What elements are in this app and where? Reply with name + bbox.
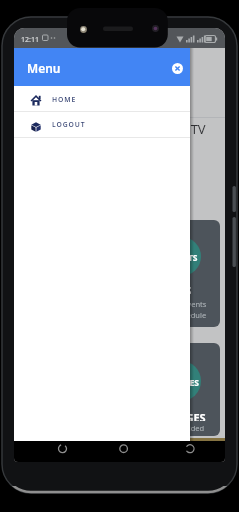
button[interactable]: HOME <box>14 86 190 111</box>
button[interactable] <box>112 440 136 460</box>
staticText: packages provided <box>138 423 205 431</box>
staticText: HOME <box>52 95 77 103</box>
staticText: EVENTS <box>166 252 198 262</box>
staticText: with their schedule <box>139 310 207 318</box>
staticText: Lists all the events <box>142 299 207 307</box>
staticText: PACKAGES <box>156 377 199 387</box>
staticText: LOGOUT <box>52 120 86 128</box>
button[interactable] <box>172 63 183 74</box>
button[interactable]: LOGOUT <box>14 112 190 137</box>
staticText: EVENTS <box>154 284 192 294</box>
button[interactable]: EVENTS <box>30 220 220 327</box>
button[interactable] <box>51 440 75 460</box>
button[interactable] <box>178 440 202 460</box>
staticText: 12:11 <box>21 35 39 45</box>
staticText: LIVE TV <box>161 120 206 136</box>
staticText: PACKAGES <box>150 410 206 421</box>
button[interactable]: PACKAGES <box>30 343 220 436</box>
staticText: Menu <box>27 60 61 76</box>
